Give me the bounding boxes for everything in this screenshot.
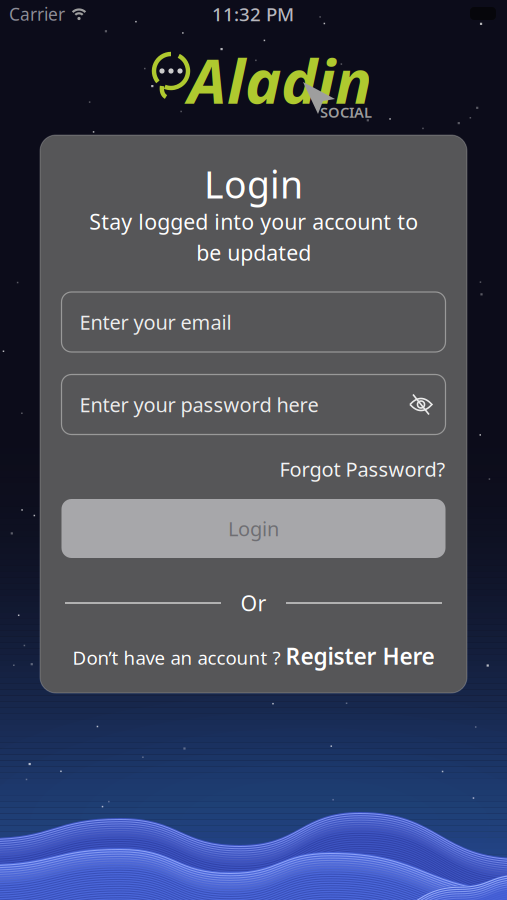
staticText: Login <box>228 515 279 542</box>
staticText: Aladin <box>188 39 372 121</box>
button[interactable]: Forgot Password? <box>279 456 445 482</box>
button[interactable]: Login <box>61 499 445 558</box>
staticText: Login <box>204 159 303 209</box>
button[interactable]: Don’t have an account ? Register Here <box>72 641 434 671</box>
staticText: Stay logged into your account to be upda… <box>89 207 418 267</box>
button[interactable]: Enter your email <box>61 292 445 352</box>
staticText: Don’t have an account ? Register Here <box>72 641 434 671</box>
staticText: Forgot Password? <box>279 456 445 482</box>
staticText: Enter your email <box>79 309 231 335</box>
staticText: SOCIAL <box>320 102 372 122</box>
staticText: Enter your password here <box>79 391 318 418</box>
staticText: Carrier <box>9 2 65 25</box>
button[interactable]: Enter your password here <box>61 374 445 434</box>
staticText: Or <box>240 589 266 617</box>
staticText: 11:32 PM <box>212 2 294 26</box>
